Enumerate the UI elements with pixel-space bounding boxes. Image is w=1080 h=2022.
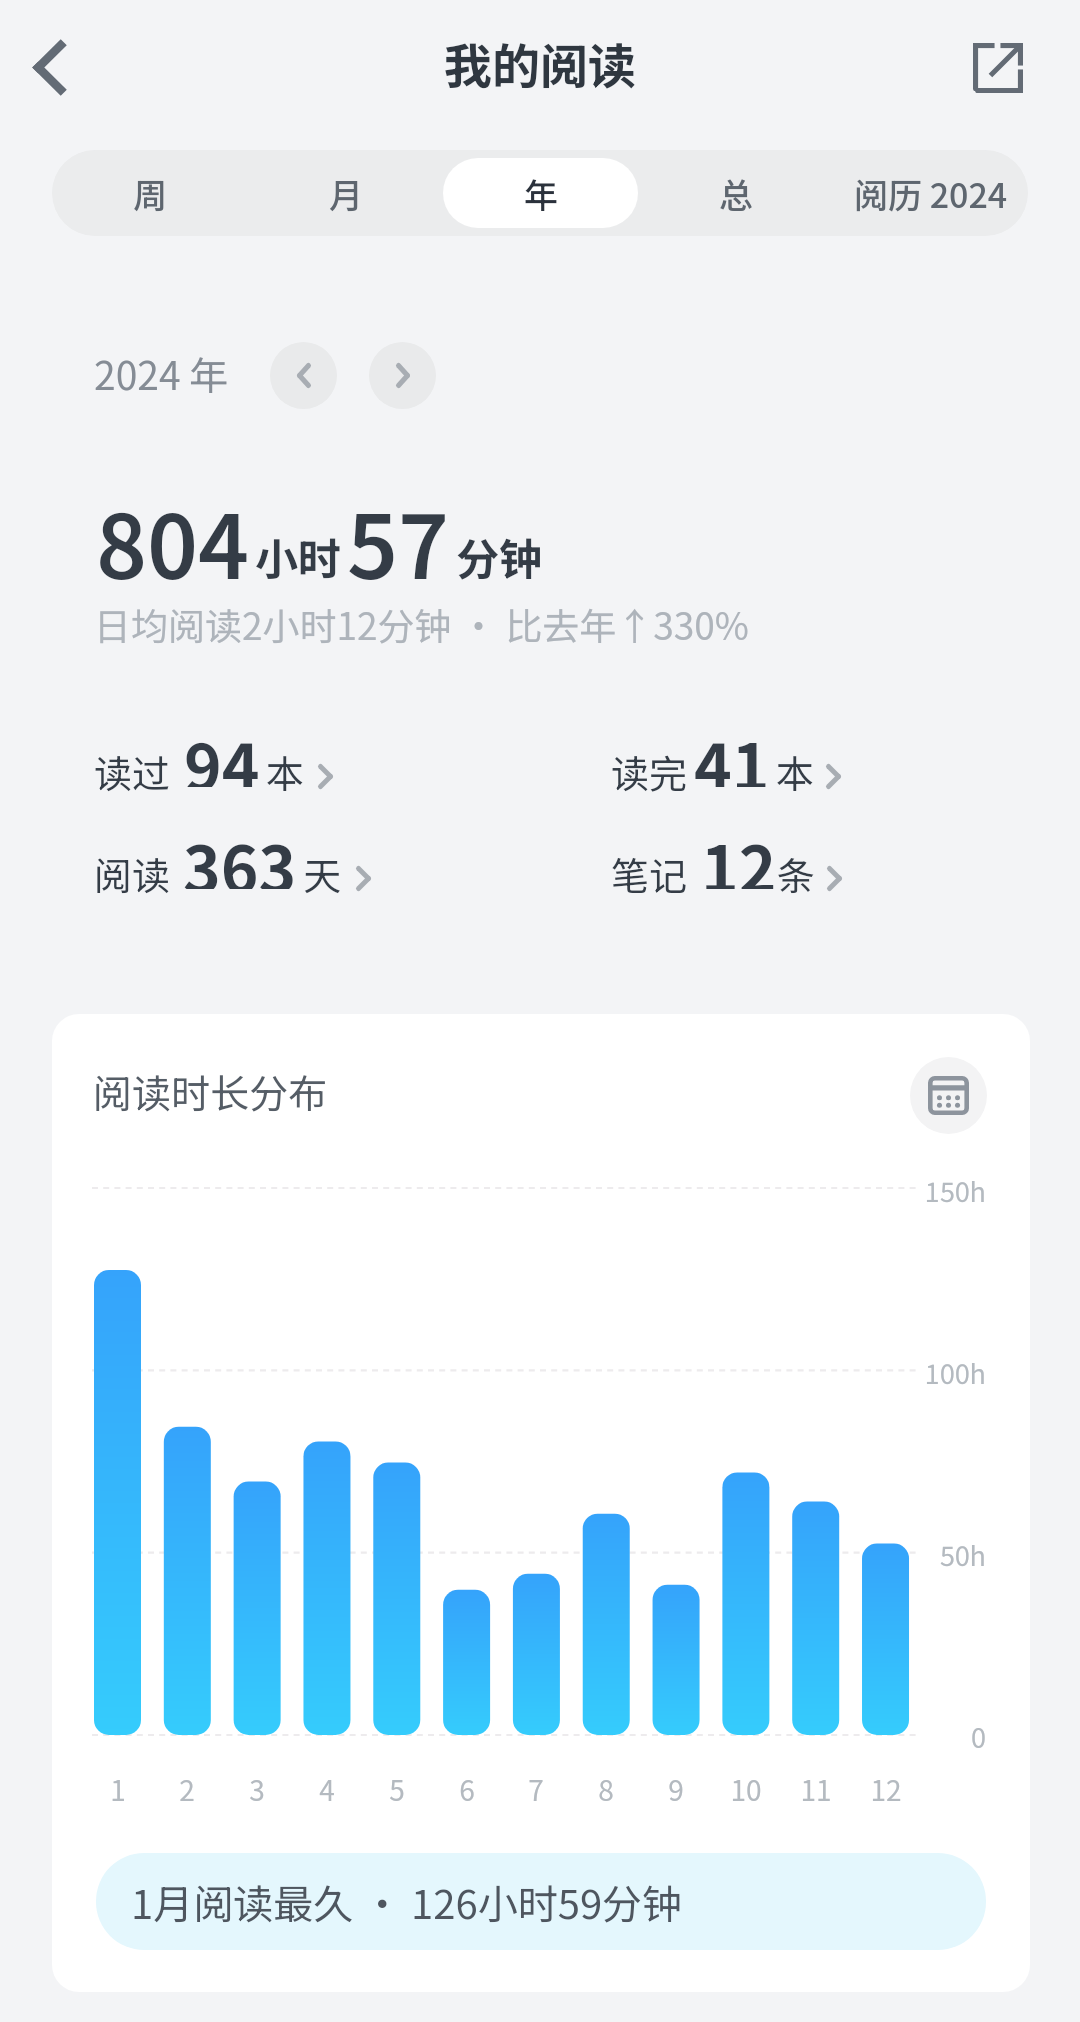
button[interactable]: Next year (369, 342, 436, 409)
staticText: 2 (179, 1769, 195, 1810)
staticText: 1 (110, 1769, 126, 1810)
button[interactable]: Previous year (270, 342, 337, 409)
button[interactable]: 阅读 (88, 835, 379, 905)
staticText: 读完 (611, 744, 688, 799)
staticText: 我的阅读 (444, 28, 637, 98)
staticText: 8 (598, 1769, 614, 1810)
staticText: 41 (694, 717, 770, 787)
staticText: 94 (184, 717, 260, 787)
staticText: 本 (776, 744, 815, 799)
staticText: 月 (329, 169, 363, 218)
staticText: 9 (668, 1769, 684, 1810)
button[interactable]: 1月阅读最久 · 126小时59分钟 (96, 1853, 986, 1950)
staticText: 分钟 (456, 525, 542, 587)
staticText: 12 (870, 1769, 902, 1810)
staticText: 7 (528, 1769, 544, 1810)
staticText: 日均阅读2小时12分钟 · 比去年↑330% (94, 597, 749, 651)
staticText: 周 (133, 169, 167, 218)
staticText: 条 (777, 846, 816, 901)
button[interactable]: Share (953, 23, 1042, 112)
button[interactable]: Calendar (910, 1057, 987, 1134)
button[interactable]: 总 (638, 158, 833, 228)
button[interactable]: 读完 (605, 733, 849, 803)
staticText: 363 (183, 819, 297, 889)
staticText: 150h (924, 1171, 986, 1210)
staticText: 小时 (255, 525, 341, 587)
staticText: 阅读 (94, 846, 171, 901)
button[interactable]: 年 (443, 158, 638, 228)
staticText: 57 (347, 477, 450, 604)
staticText: 本 (266, 744, 305, 799)
staticText: 3 (249, 1769, 265, 1810)
staticText: 总 (719, 169, 753, 218)
staticText: 2024 年 (94, 345, 229, 401)
staticText: 6 (459, 1769, 475, 1810)
button[interactable]: 笔记 (605, 835, 850, 905)
staticText: 笔记 (611, 846, 688, 901)
staticText: 0 (971, 1717, 986, 1756)
staticText: 阅读时长分布 (93, 1063, 328, 1119)
staticText: 804 (96, 477, 250, 604)
staticText: 1月阅读最久 · 126小时59分钟 (131, 1873, 683, 1931)
button[interactable]: 周 (52, 158, 248, 228)
staticText: 阅历 2024 (854, 169, 1008, 218)
staticText: 5 (389, 1769, 405, 1810)
staticText: 4 (319, 1769, 335, 1810)
staticText: 100h (924, 1353, 986, 1392)
button[interactable]: Back (5, 23, 94, 112)
staticText: 年 (524, 169, 558, 218)
staticText: 读过 (94, 744, 171, 799)
staticText: 10 (730, 1769, 762, 1810)
button[interactable]: 阅历 2024 (833, 158, 1028, 228)
staticText: 50h (939, 1535, 986, 1574)
staticText: 11 (800, 1769, 832, 1810)
staticText: 12 (701, 819, 777, 889)
button[interactable]: 读过 (88, 733, 341, 803)
button[interactable]: 月 (248, 158, 443, 228)
staticText: 天 (303, 846, 342, 901)
